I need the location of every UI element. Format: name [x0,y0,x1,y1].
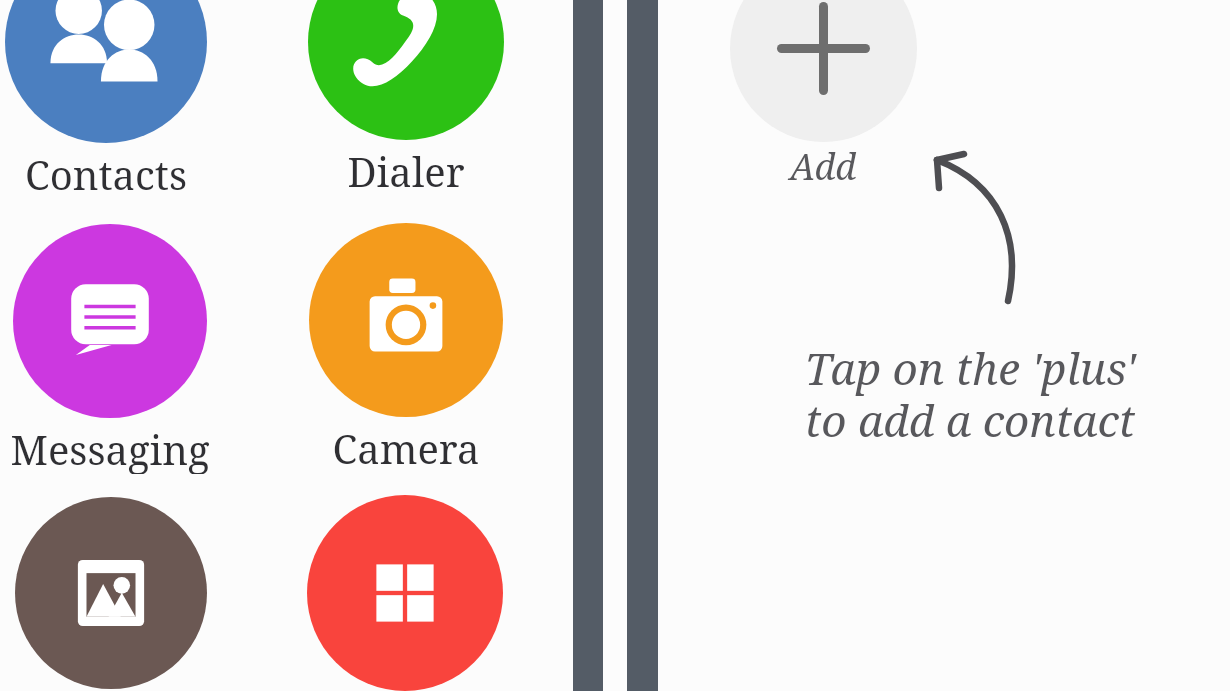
button[interactable]: Dialer [308,0,504,140]
button[interactable]: Add contact [730,0,917,142]
button[interactable]: Camera [309,223,503,417]
staticText: Messaging [0,422,300,474]
button[interactable]: Contacts [5,0,207,143]
button[interactable]: IMAGE [15,497,207,689]
button[interactable]: Messaging [13,224,207,418]
staticText: Dialer [216,144,596,196]
staticText: Camera [216,421,596,473]
staticText: Add [723,142,923,188]
button[interactable]: GRID [307,495,503,691]
staticText: Tap on the 'plus' to add a contact [760,338,1180,458]
staticText: Contacts [0,147,296,199]
